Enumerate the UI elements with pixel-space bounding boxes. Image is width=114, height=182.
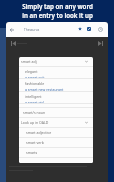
staticText: Thesaurus xyxy=(24,28,40,32)
button[interactable]: Look up in OALD xyxy=(19,118,93,127)
button[interactable]: smart/s noun xyxy=(19,108,93,117)
staticText: smarts xyxy=(26,150,38,155)
staticText: intelligent xyxy=(25,94,42,99)
button[interactable]: Previous entry xyxy=(9,39,17,47)
button[interactable]: smart adj xyxy=(19,57,93,66)
button[interactable]: Notes xyxy=(85,25,93,33)
staticText: Simply tap on any word xyxy=(22,2,93,10)
staticText: Look up in OALD xyxy=(21,120,49,125)
button[interactable]: smarts xyxy=(19,148,93,157)
button[interactable]: smart adjective xyxy=(19,128,93,137)
button[interactable]: Next entry xyxy=(96,39,104,47)
staticText: in an entry to look it up xyxy=(22,11,93,19)
staticText: elegant xyxy=(25,69,38,74)
staticText: smart adj xyxy=(21,59,37,64)
staticText: a smart suit xyxy=(25,75,45,78)
button[interactable]: intelligent xyxy=(19,92,93,103)
button[interactable]: fashionable xyxy=(19,79,93,91)
staticText: fashionable xyxy=(25,81,45,86)
button[interactable]: elegant xyxy=(19,67,93,78)
staticText: smart/s noun xyxy=(23,110,46,115)
staticText: a smart girl xyxy=(25,100,44,103)
staticText: a smart new restaurant xyxy=(25,87,64,91)
button[interactable]: Back xyxy=(7,25,17,35)
staticText: smart adjective xyxy=(26,130,52,135)
button[interactable]: smart verb xyxy=(19,138,93,147)
staticText: smart verb xyxy=(26,140,44,145)
button[interactable]: History xyxy=(96,25,104,33)
button[interactable]: Bookmark xyxy=(76,25,84,33)
